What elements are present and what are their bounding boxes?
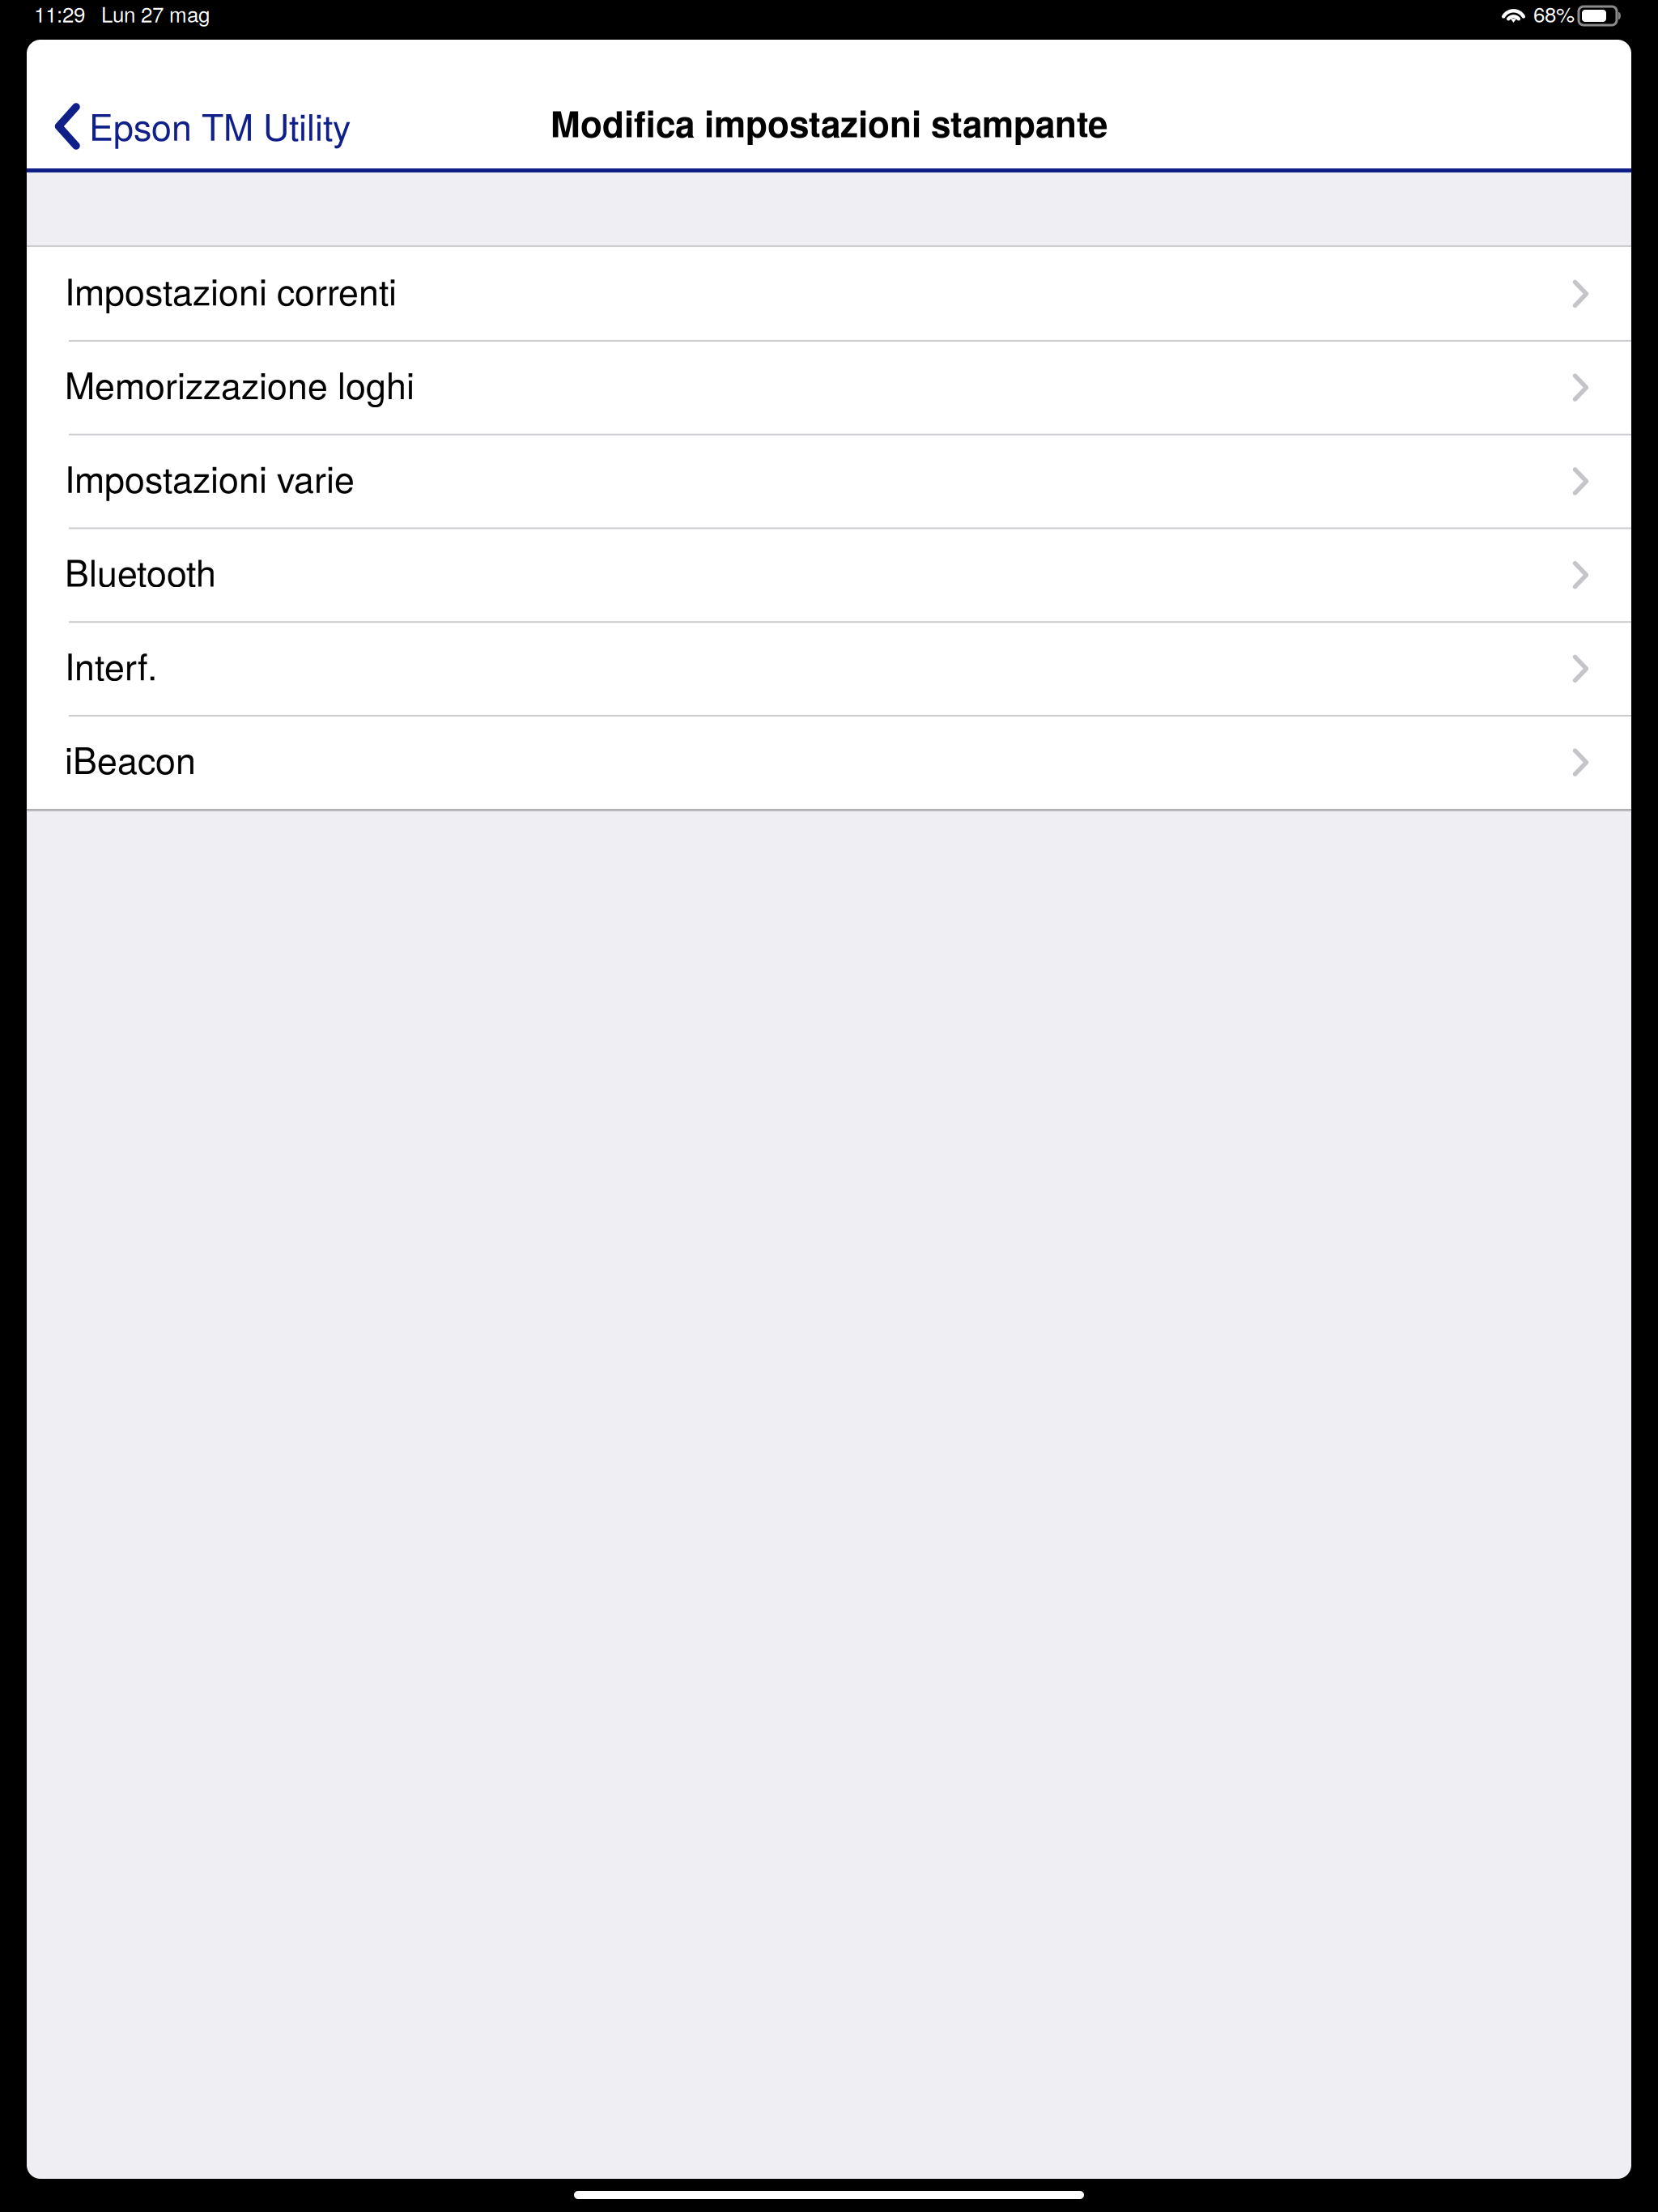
button[interactable]: Impostazioni varie [27, 434, 1631, 528]
staticText: Epson TM Utility [89, 99, 351, 151]
staticText: Bluetooth [65, 545, 216, 597]
staticText: iBeacon [65, 732, 196, 784]
staticText: Interf. [65, 639, 157, 691]
button[interactable]: Bluetooth [27, 528, 1631, 622]
button[interactable]: iBeacon [27, 716, 1631, 809]
button[interactable]: Interf. [27, 622, 1631, 716]
button[interactable]: Epson TM Utility [27, 40, 365, 168]
staticText: Impostazioni correnti [65, 264, 397, 316]
staticText: Modifica impostazioni stampante [551, 97, 1107, 148]
staticText: Impostazioni varie [65, 451, 355, 503]
staticText: Memorizzazione loghi [65, 358, 414, 409]
staticText: 68% [1533, 0, 1575, 28]
button[interactable]: Impostazioni correnti [27, 247, 1631, 341]
button[interactable]: Memorizzazione loghi [27, 341, 1631, 434]
staticText: Lun 27 mag [101, 0, 210, 28]
staticText: 11:29 [34, 0, 85, 28]
